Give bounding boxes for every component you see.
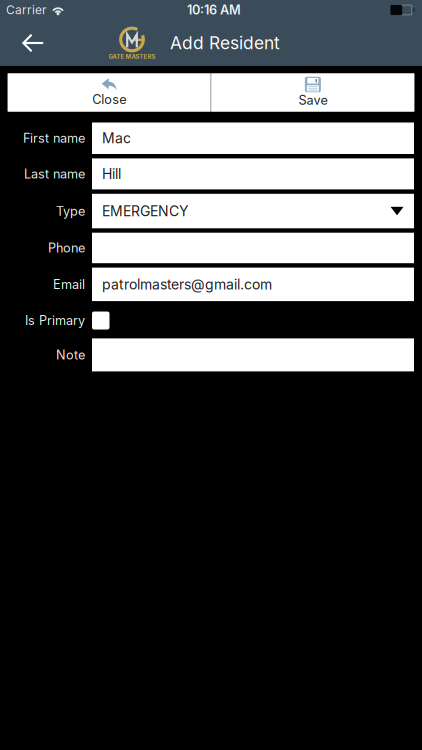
staticText: EMERGENCY [102,203,189,219]
staticText: Save [298,93,327,108]
staticText: GATE MASTERS [108,53,155,60]
button[interactable]: Back [11,21,55,65]
button[interactable]: Is Primary [92,311,109,329]
staticText: Email [53,277,85,292]
button[interactable]: Hill [92,158,414,189]
staticText: Carrier [6,3,47,17]
staticText: Note [56,347,85,362]
staticText: Hill [102,165,121,182]
button[interactable]: EMERGENCY [92,194,414,228]
button[interactable] [92,338,414,371]
staticText: Close [92,92,126,107]
staticText: patrolmasters@gmail.com [102,276,272,293]
button[interactable]: Save [211,73,414,111]
button[interactable]: Close [8,73,211,111]
staticText: Add Resident [170,32,280,53]
button[interactable]: Mac [92,122,414,154]
button[interactable]: patrolmasters@gmail.com [92,268,414,301]
staticText: Mac [102,130,131,147]
staticText: Type [56,203,85,219]
staticText: Phone [48,240,85,256]
staticText: Is Primary [25,313,85,328]
staticText: 10:16 AM [187,2,241,18]
staticText: First name [23,131,85,146]
staticText: Last name [24,166,85,181]
